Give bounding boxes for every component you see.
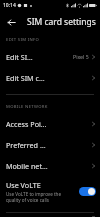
button[interactable]: Preferred network type	[0, 134, 100, 155]
staticText: Access Point Names	[6, 119, 48, 129]
staticText: Edit SIM card number	[6, 73, 48, 83]
button[interactable]: Edit SIM card name	[0, 46, 100, 67]
staticText: 10:14	[3, 2, 16, 9]
button[interactable]: Access Point Names	[0, 113, 100, 134]
button[interactable]: Mobile networks	[0, 155, 100, 176]
button[interactable]: Back	[3, 14, 19, 30]
button[interactable]: Edit SIM card number	[0, 67, 100, 88]
staticText: Use VoLTE to improve the quality of voic…	[6, 191, 76, 203]
staticText: MOBILE NETWORK	[6, 104, 48, 110]
button[interactable]: Toggle	[79, 187, 96, 196]
staticText: Edit SIM card name	[6, 52, 39, 62]
button[interactable]: Use VoLTE	[0, 176, 100, 207]
staticText: SIM card settings	[27, 16, 96, 28]
staticText: Mobile networks	[6, 161, 48, 171]
staticText: Preferred network type	[6, 140, 48, 150]
staticText: EDIT SIM INFO	[6, 37, 40, 43]
staticText: Use VoLTE	[6, 180, 41, 190]
staticText: Pixel 5	[73, 53, 89, 60]
